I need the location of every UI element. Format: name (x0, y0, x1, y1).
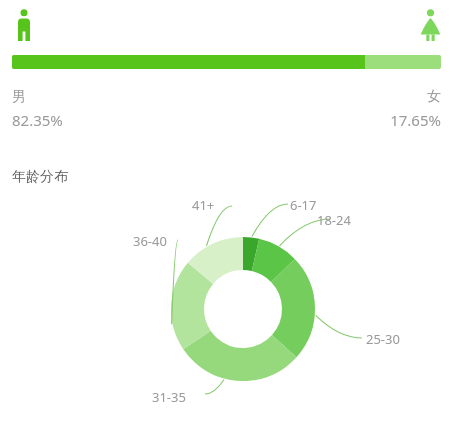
staticText: 女 (427, 88, 441, 106)
staticText: 31-35 (152, 388, 186, 406)
staticText: 82.35% (12, 110, 63, 130)
staticText: 男 (12, 88, 26, 106)
staticText: 6-17 (290, 196, 317, 214)
staticText: 17.65% (390, 110, 441, 130)
staticText: 25-30 (366, 330, 400, 348)
button[interactable]: Male (14, 9, 34, 41)
button[interactable]: Female (420, 9, 441, 41)
button[interactable]: Age distribution chart (0, 0, 454, 428)
button[interactable] (12, 55, 441, 69)
staticText: 年龄分布 (12, 168, 68, 186)
staticText: 18-24 (317, 211, 351, 229)
staticText: 41+ (192, 196, 215, 214)
staticText: 36-40 (133, 232, 167, 250)
